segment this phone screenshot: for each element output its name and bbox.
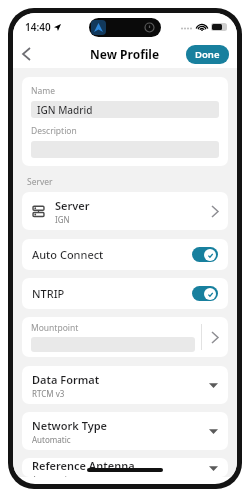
button[interactable]: Reference Antenna [22, 458, 228, 477]
button[interactable]: NTRIP [22, 278, 228, 309]
staticText: NTRIP [32, 286, 65, 301]
staticText: Data Format [32, 372, 100, 387]
button[interactable]: Data Format [22, 366, 228, 404]
staticText: Network Type [32, 418, 108, 433]
staticText: IGN Madrid [37, 103, 93, 117]
staticText: Server [55, 198, 90, 213]
button[interactable]: Auto Connect [22, 239, 228, 270]
staticText: Reference Antenna [32, 458, 135, 473]
staticText: Description [31, 125, 77, 137]
button[interactable]: Back [13, 41, 39, 67]
staticText: Mountpoint [31, 322, 79, 334]
staticText: Server [27, 176, 53, 188]
staticText: Automatic [32, 474, 71, 477]
staticText: Name [31, 85, 55, 97]
button[interactable]: IGN Madrid [31, 101, 219, 118]
staticText: New Profile [90, 46, 160, 62]
staticText: RTCM v3 [32, 388, 65, 399]
staticText: Auto Connect [32, 247, 104, 262]
button[interactable]: Network Type [22, 412, 228, 450]
button[interactable]: Server [22, 192, 228, 230]
button[interactable]: Done [186, 45, 229, 64]
staticText: Done [195, 48, 220, 61]
staticText: 14:40 [25, 20, 51, 34]
staticText: IGN [55, 214, 70, 225]
button[interactable]: Select mountpoint [202, 317, 228, 357]
staticText: Automatic [32, 434, 71, 445]
